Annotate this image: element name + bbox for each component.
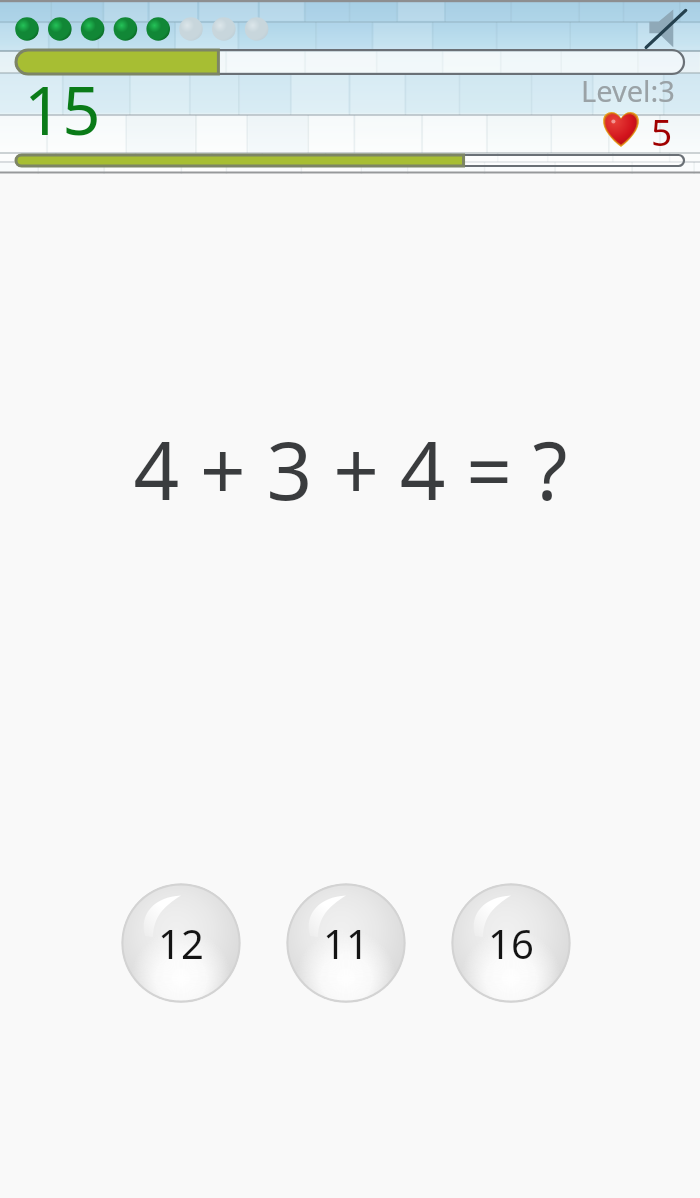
staticText: 12 <box>158 916 204 970</box>
button[interactable]: Answer 12 <box>121 883 241 1003</box>
staticText: Level:3 <box>581 71 675 110</box>
staticText: 4 + 3 + 4 = ? <box>133 414 568 523</box>
staticText: 15 <box>24 63 101 154</box>
staticText: 11 <box>323 916 369 970</box>
button[interactable]: Answer 16 <box>451 883 571 1003</box>
button[interactable]: Mute sound <box>642 6 688 50</box>
staticText: 5 <box>651 106 673 156</box>
button[interactable]: Answer 11 <box>286 883 406 1003</box>
staticText: 16 <box>488 916 534 970</box>
